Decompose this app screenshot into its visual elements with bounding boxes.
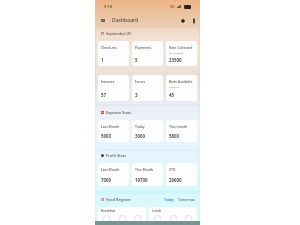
button[interactable]: Inmates (98, 75, 129, 101)
button[interactable]: Breakfast (98, 207, 146, 225)
button[interactable]: Last Month (98, 163, 129, 186)
staticText: Food Register (106, 197, 132, 202)
staticText: Last Month (101, 167, 120, 172)
staticText: Today (135, 124, 145, 129)
staticText: Lunch (152, 209, 162, 213)
button[interactable]: Notifications (178, 16, 187, 25)
button[interactable]: Issues (132, 75, 163, 101)
staticText: 5 (135, 57, 138, 63)
staticText: This Month (135, 167, 154, 172)
staticText: 3000 (135, 133, 146, 139)
button[interactable]: Today (164, 197, 174, 202)
button[interactable]: Lunch (149, 207, 197, 225)
button[interactable]: Check-ins (98, 41, 129, 66)
staticText: 57 (101, 92, 107, 98)
button[interactable]: Rent Collected (166, 41, 197, 66)
staticText: 3 (135, 92, 138, 98)
staticText: 5G (170, 4, 175, 9)
button[interactable]: YTD (166, 163, 197, 186)
staticText: out of 38000 (169, 51, 184, 54)
staticText: 5800 (169, 133, 180, 139)
staticText: 26600 (169, 177, 182, 183)
staticText: 45 (169, 92, 175, 98)
staticText: Rent Collected (169, 45, 193, 50)
staticText: Expense Stats (106, 110, 132, 115)
staticText: out of 60 (169, 85, 180, 88)
staticText: 1 (101, 57, 104, 63)
staticText: YTD (169, 167, 176, 172)
button[interactable]: Open navigation menu (98, 15, 108, 25)
button[interactable]: Beds Available (166, 75, 197, 101)
staticText: 7000 (101, 177, 112, 183)
staticText: Last Month (101, 124, 120, 129)
staticText: This month (169, 124, 188, 129)
staticText: September'25 (106, 31, 132, 36)
button[interactable]: Today (132, 120, 163, 142)
button[interactable]: Last Month (98, 120, 129, 142)
staticText: 5000 (101, 133, 112, 139)
staticText: 23500 (169, 57, 182, 63)
staticText: Beds Available (169, 79, 193, 84)
staticText: Payments (135, 45, 152, 50)
button[interactable]: Payments (132, 41, 163, 66)
staticText: Inmates (101, 79, 115, 84)
button[interactable]: Tomorrow (178, 197, 195, 202)
button[interactable]: This Month (132, 163, 163, 186)
staticText: Breakfast (101, 209, 116, 213)
staticText: Dashboard (112, 17, 139, 24)
staticText: Profit Stats (106, 153, 126, 158)
button[interactable]: More options (190, 17, 197, 24)
staticText: Issues (135, 79, 146, 84)
staticText: 9:18 (104, 4, 113, 10)
button[interactable]: This month (166, 120, 197, 142)
staticText: 19700 (135, 177, 148, 183)
staticText: Check-ins (101, 45, 117, 50)
